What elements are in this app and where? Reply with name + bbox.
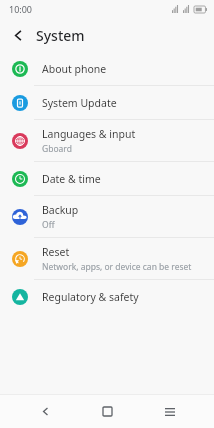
button[interactable]: Back xyxy=(27,395,63,428)
button[interactable]: Recent apps xyxy=(152,395,188,428)
staticText: Reset xyxy=(42,245,70,259)
button[interactable]: Home xyxy=(89,395,125,428)
staticText: Languages & input xyxy=(42,127,136,141)
staticText: Off xyxy=(42,219,55,231)
staticText: Backup xyxy=(42,203,79,217)
staticText: About phone xyxy=(42,62,107,76)
button[interactable]: Languages & input xyxy=(0,120,214,161)
button[interactable]: Regulatory & safety xyxy=(0,280,214,313)
button[interactable]: System Update xyxy=(0,86,214,119)
staticText: 10:00 xyxy=(9,3,33,15)
staticText: Date & time xyxy=(42,172,101,186)
button[interactable]: About phone xyxy=(0,52,214,85)
button[interactable]: Reset xyxy=(0,238,214,279)
button[interactable]: Date & time xyxy=(0,162,214,195)
staticText: System xyxy=(36,26,85,45)
staticText: Regulatory & safety xyxy=(42,290,139,304)
staticText: Network, apps, or device can be reset xyxy=(42,261,192,273)
staticText: Gboard xyxy=(42,143,72,155)
button[interactable]: Back xyxy=(6,23,30,47)
button[interactable]: Backup xyxy=(0,196,214,237)
staticText: System Update xyxy=(42,96,117,110)
